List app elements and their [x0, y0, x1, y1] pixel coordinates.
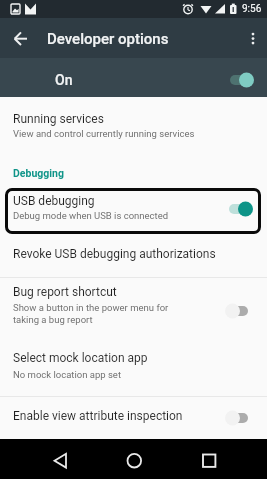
staticText: On	[55, 72, 73, 88]
button[interactable]	[6, 24, 34, 52]
button[interactable]	[0, 439, 89, 479]
button[interactable]: USB debugging	[5, 188, 261, 234]
button[interactable]: Enable view attribute inspection	[0, 397, 267, 439]
button[interactable]	[178, 439, 267, 479]
staticText: Developer options	[47, 30, 169, 48]
button[interactable]	[241, 26, 265, 50]
staticText: Revoke USB debugging authorizations	[13, 247, 216, 261]
staticText: Bug report shortcut	[13, 285, 117, 299]
button[interactable]: Bug report shortcut	[0, 278, 267, 334]
staticText: Debug mode when USB is connected	[13, 210, 169, 221]
button[interactable]: Select mock location app	[0, 334, 267, 396]
staticText: View and control currently running servi…	[13, 128, 195, 139]
staticText: Running services	[13, 112, 104, 126]
staticText: Select mock location app	[13, 351, 148, 365]
button[interactable]: On	[0, 58, 267, 97]
staticText: 9:56	[242, 3, 262, 15]
staticText: USB debugging	[13, 194, 95, 208]
staticText: Debugging	[13, 167, 64, 179]
button[interactable]	[89, 439, 178, 479]
staticText: Enable view attribute inspection	[13, 409, 183, 423]
staticText: No mock location app set	[13, 369, 121, 380]
button[interactable]: Revoke USB debugging authorizations	[0, 234, 267, 277]
staticText: Show a button in the power menu for taki…	[13, 302, 169, 325]
button[interactable]: Running services	[0, 97, 267, 139]
